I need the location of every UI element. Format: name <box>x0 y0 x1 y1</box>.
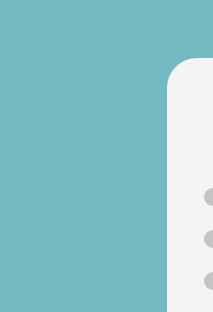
other: Page indicator <box>0 0 213 312</box>
button[interactable]: Side panel <box>167 58 213 312</box>
